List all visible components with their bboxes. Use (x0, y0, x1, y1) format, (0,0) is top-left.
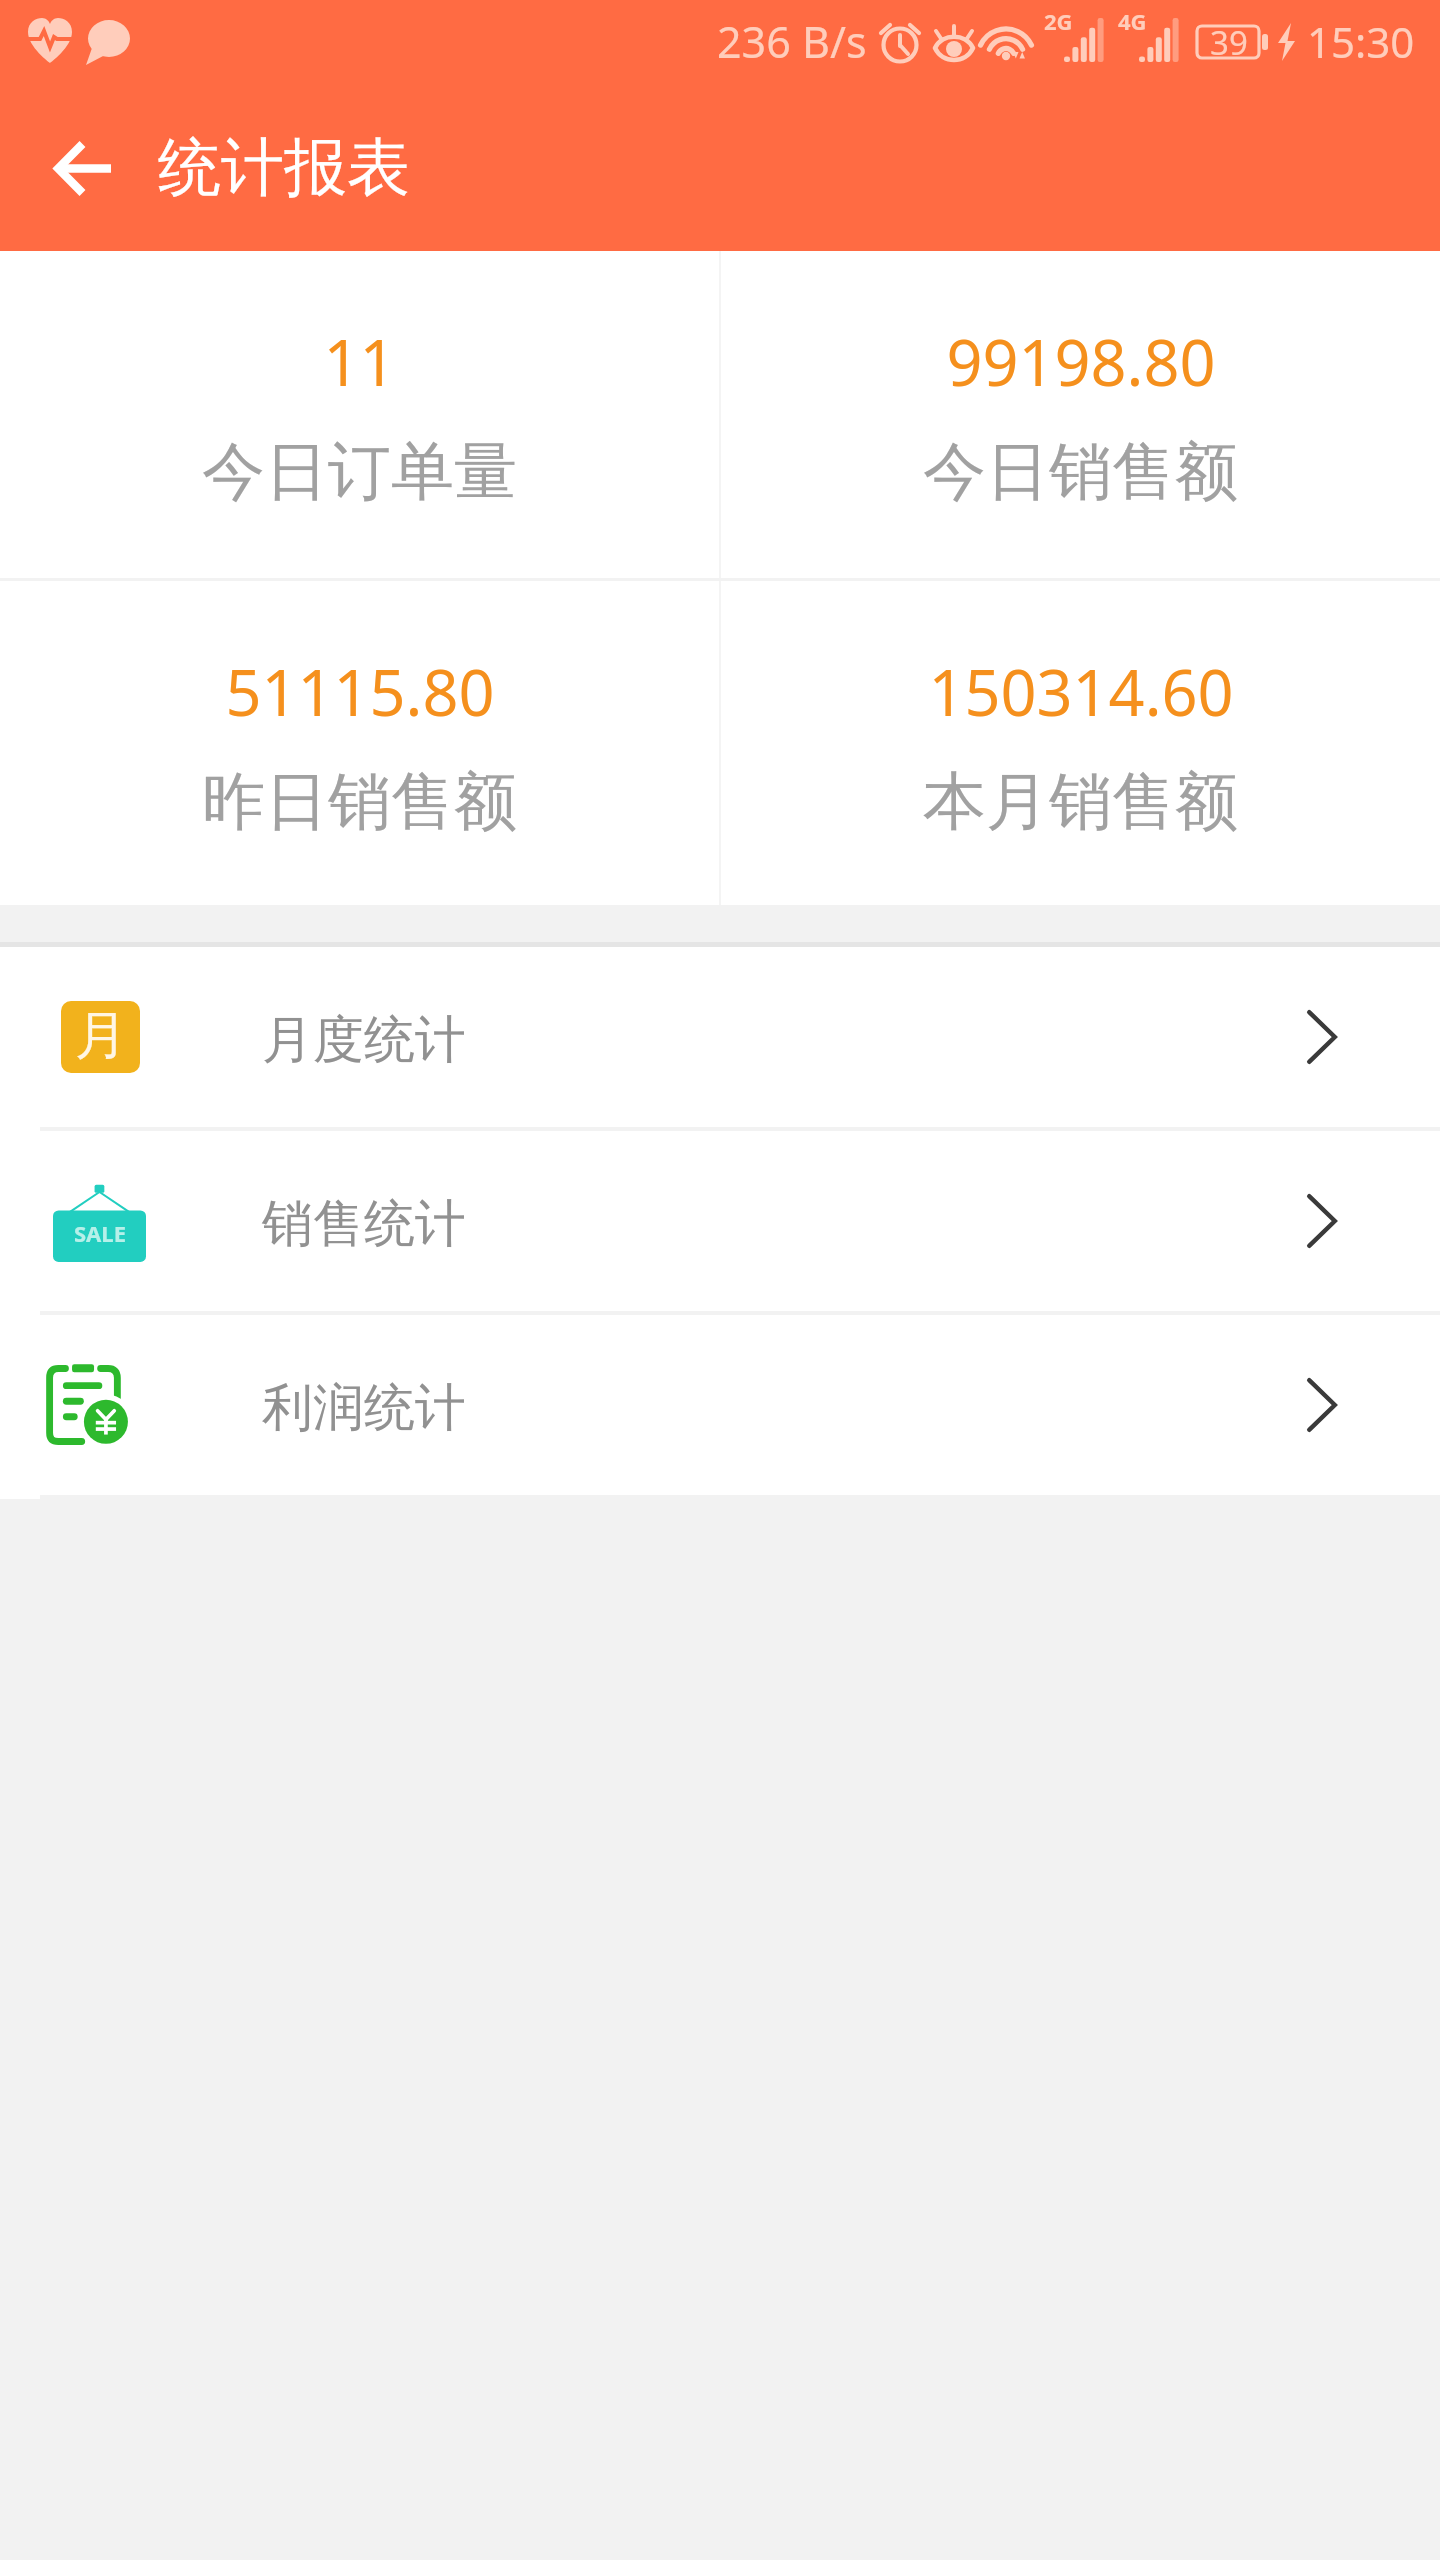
staticText: SALE (74, 1218, 126, 1248)
button[interactable]: 月 (0, 947, 1440, 1127)
staticText: 2G (1044, 6, 1073, 36)
staticText: 昨日销售额 (202, 762, 517, 841)
staticText: 今日销售额 (923, 432, 1238, 511)
button[interactable]: 51115.80 (0, 581, 719, 905)
button[interactable]: SALE (0, 1131, 1440, 1311)
staticText: 39 (1210, 20, 1248, 65)
staticText: 15:30 (1307, 13, 1415, 70)
button[interactable]: 11 (0, 251, 719, 578)
staticText: 统计报表 (158, 128, 410, 207)
staticText: 150314.60 (928, 649, 1234, 735)
staticText: 销售统计 (262, 1192, 466, 1256)
staticText: 4G (1118, 6, 1147, 36)
staticText: 今日订单量 (202, 432, 517, 511)
staticText: 月度统计 (262, 1008, 466, 1072)
staticText: 236 B/s (717, 12, 867, 71)
staticText: 利润统计 (262, 1376, 466, 1440)
staticText: 本月销售额 (923, 762, 1238, 841)
staticText: 51115.80 (225, 649, 495, 735)
staticText: 99198.80 (946, 319, 1216, 405)
button[interactable]: 99198.80 (721, 251, 1440, 578)
button[interactable]: 150314.60 (721, 581, 1440, 905)
button[interactable]: Back (22, 108, 142, 228)
staticText: 11 (323, 319, 396, 405)
staticText: 月 (75, 1003, 127, 1069)
button[interactable]: 利润统计 (0, 1315, 1440, 1495)
